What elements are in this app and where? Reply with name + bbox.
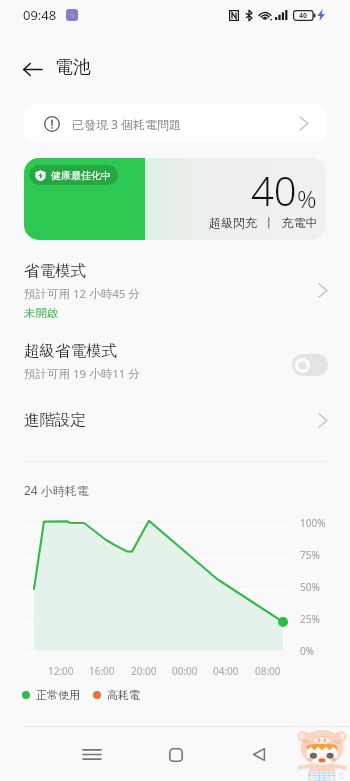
staticText: 超級閃充 丨 充電中 (209, 214, 318, 230)
button[interactable]: 健康最佳化中 (24, 158, 326, 240)
staticText: 正常使用 (36, 688, 80, 702)
button[interactable]: 進階設定 (0, 396, 350, 444)
staticText: 100% (300, 516, 326, 530)
staticText: 12:00 (48, 664, 74, 678)
staticText: 未開啟 (24, 306, 59, 320)
staticText: % (297, 182, 317, 215)
staticText: 24 小時耗電 (24, 482, 89, 498)
button[interactable]: Recents (64, 730, 120, 781)
staticText: 高耗電 (107, 688, 140, 702)
staticText: 已發現 3 個耗電問題 (72, 116, 182, 132)
staticText: 健康最佳化中 (51, 169, 111, 182)
staticText: 超級省電模式 (24, 341, 117, 361)
staticText: 75% (300, 548, 320, 562)
button[interactable]: Back (231, 730, 287, 781)
staticText: 進階設定 (24, 410, 86, 430)
button[interactable]: 省電模式 (0, 252, 350, 328)
staticText: 04:00 (213, 664, 239, 678)
button[interactable]: 已發現 3 個耗電問題 (24, 104, 326, 143)
staticText: 16:00 (89, 664, 115, 678)
staticText: 09:48 (23, 6, 57, 24)
button[interactable]: Toggle super power saving (292, 354, 328, 376)
staticText: 預計可用 19 小時11 分 (24, 366, 140, 382)
staticText: 20:00 (131, 664, 157, 678)
staticText: 40 (299, 11, 308, 21)
staticText: 預計可用 12 小時45 分 (24, 286, 140, 302)
staticText: 0% (300, 644, 315, 658)
staticText: 電池 (55, 56, 91, 79)
staticText: 省電模式 (24, 261, 86, 281)
staticText: 08:00 (255, 664, 281, 678)
staticText: 00:00 (172, 664, 198, 678)
button[interactable]: Back (17, 54, 47, 84)
staticText: 25% (300, 612, 320, 626)
button[interactable]: Home (148, 730, 204, 781)
button[interactable]: 超級省電模式 (0, 332, 350, 388)
staticText: 50% (300, 580, 320, 594)
staticText: 40 (251, 163, 297, 217)
